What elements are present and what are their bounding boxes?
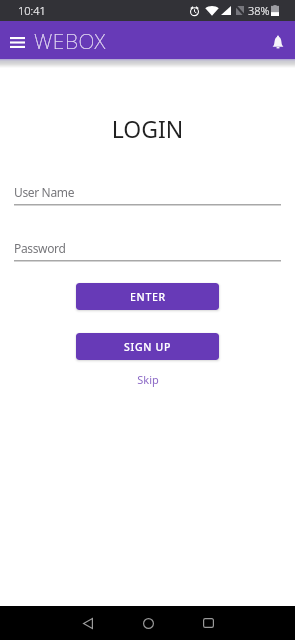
button[interactable]: User Name [14,184,281,206]
staticText: LOGIN [0,113,295,144]
button[interactable]: Password [14,240,281,262]
staticText: Skip [137,372,159,387]
staticText: ENTER [130,290,166,304]
button[interactable]: Home [134,609,162,637]
button[interactable]: Skip [127,370,169,389]
staticText: Password [14,240,66,256]
staticText: User Name [14,184,75,200]
button[interactable]: Recent apps [194,609,222,637]
button[interactable]: Menu [4,27,30,57]
staticText: 10:41 [18,3,46,18]
button[interactable]: SIGN UP [76,333,219,360]
button[interactable]: ENTER [76,283,219,310]
button[interactable]: Notifications [265,27,291,57]
button[interactable]: Back [74,609,102,637]
staticText: 38% [248,3,270,18]
staticText: WEBOX [34,27,106,56]
staticText: SIGN UP [124,340,172,354]
